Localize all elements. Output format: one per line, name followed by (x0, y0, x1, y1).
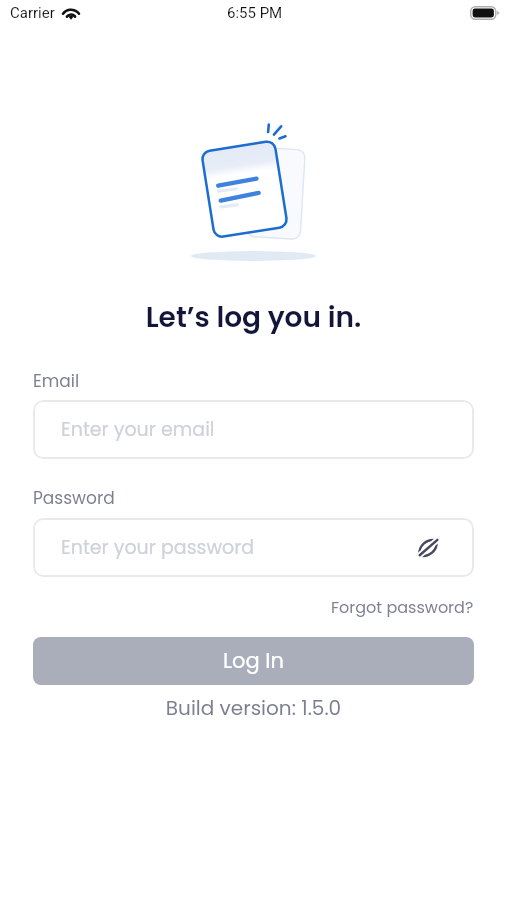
staticText: 6:55 PM (227, 4, 283, 22)
button[interactable]: Forgot password? (331, 596, 474, 618)
staticText: Email (33, 369, 80, 393)
button[interactable]: Enter your password (33, 518, 474, 577)
button[interactable]: Enter your email (33, 400, 474, 459)
staticText: Enter your email (61, 416, 215, 443)
staticText: Password (33, 486, 115, 510)
button[interactable]: Show password (412, 532, 444, 564)
staticText: Build version: 1.5.0 (0, 694, 507, 722)
staticText: Log In (223, 646, 284, 675)
staticText: Carrier (10, 4, 55, 22)
staticText: Let’s log you in. (0, 298, 507, 337)
staticText: Enter your password (61, 534, 255, 561)
button[interactable]: Log In (33, 637, 474, 685)
staticText: Forgot password? (331, 596, 474, 618)
